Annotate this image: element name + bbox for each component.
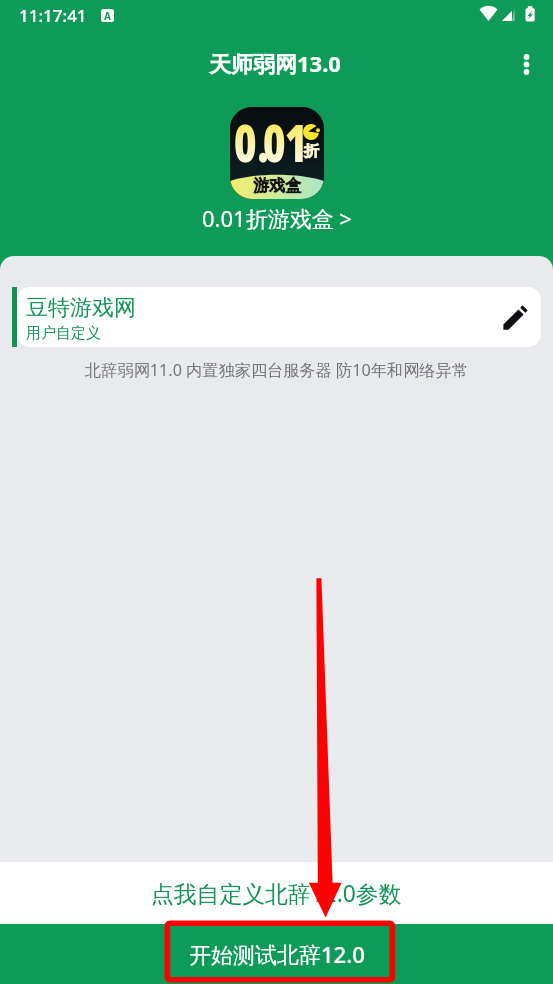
- button[interactable]: Edit: [502, 304, 529, 331]
- staticText: A: [104, 9, 111, 22]
- button[interactable]: 豆特游戏网: [17, 287, 541, 347]
- button[interactable]: 0.01折游戏盒: [230, 107, 324, 199]
- staticText: 0: [263, 108, 286, 177]
- button[interactable]: More options: [505, 30, 553, 86]
- staticText: 0.01折游戏盒 >: [202, 203, 352, 233]
- staticText: 天师弱网13.0: [209, 48, 341, 78]
- button[interactable]: 点我自定义北辞12.0参数: [0, 862, 553, 924]
- staticText: 折: [304, 142, 319, 161]
- staticText: 1: [285, 108, 308, 177]
- button[interactable]: 0.01折游戏盒 >: [202, 203, 352, 233]
- staticText: .: [257, 108, 269, 177]
- staticText: 游戏盒: [253, 176, 301, 196]
- staticText: 北辞弱网11.0 内置独家四台服务器 防10年和网络异常: [0, 359, 553, 381]
- button[interactable]: 开始测试北辞12.0: [0, 924, 553, 984]
- staticText: 豆特游戏网: [26, 294, 136, 322]
- staticText: 点我自定义北辞12.0参数: [151, 878, 402, 909]
- staticText: 用户自定义: [26, 324, 101, 343]
- staticText: 开始测试北辞12.0: [189, 939, 365, 969]
- staticText: 11:17:41: [19, 4, 87, 27]
- staticText: 0: [234, 108, 257, 177]
